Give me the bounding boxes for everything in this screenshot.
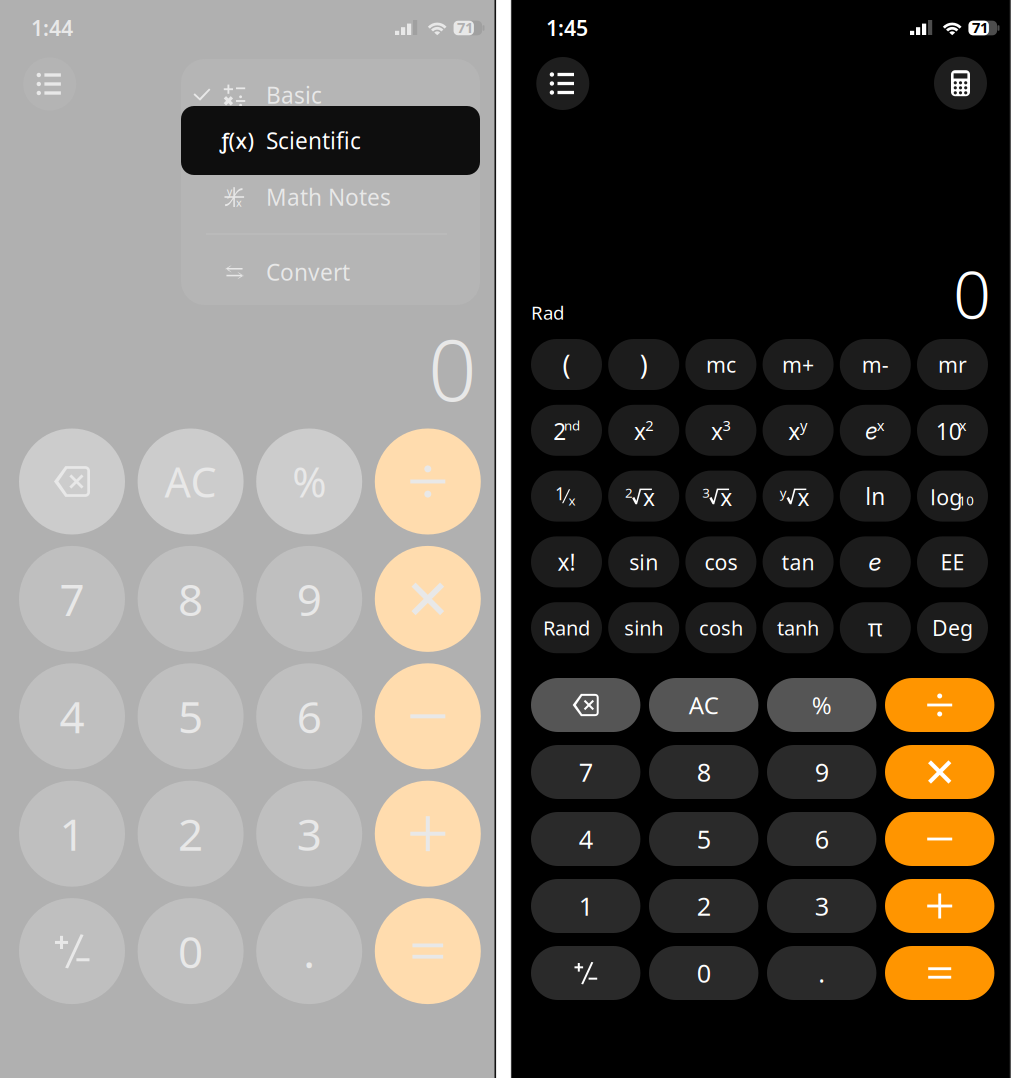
button[interactable]: 9 [767,745,876,799]
button[interactable]: tanh [763,602,834,653]
button[interactable]: ƒ(x) [181,106,480,174]
button[interactable]: 10 to the power x [917,405,988,456]
staticText: nd [564,416,580,434]
staticText: 0 [697,956,711,990]
staticText: % [812,689,832,721]
button[interactable]: x squared [608,405,679,456]
button[interactable]: 6 [256,663,362,769]
button[interactable]: y [181,163,480,231]
button[interactable]: 4 [19,663,125,769]
button[interactable]: Deg [917,602,988,653]
button[interactable]: 3 [767,879,876,933]
button[interactable]: y root of x [763,471,834,522]
button[interactable]: 1 [19,781,125,887]
button[interactable]: Calculator modes [23,57,76,110]
button[interactable]: Calculator keypad [934,57,987,110]
button[interactable]: 0 [138,898,244,1004]
button[interactable]: 5 [649,812,758,866]
button[interactable]: ) [608,339,679,390]
button[interactable]: 7 [531,745,640,799]
button[interactable]: Basic [181,61,480,129]
button[interactable]: 1 [531,879,640,933]
staticText: Math Notes [266,182,391,212]
button[interactable]: 4 [531,812,640,866]
button[interactable]: x! [531,536,602,587]
button[interactable]: Subtract [885,812,994,866]
staticText: mr [938,350,967,379]
button[interactable]: sin [608,536,679,587]
staticText: 2 [697,889,711,923]
button[interactable]: Second functions [531,405,602,456]
staticText: 1 [555,482,565,505]
button[interactable]: 2 [138,781,244,887]
button[interactable]: 2 [649,879,758,933]
button[interactable]: Multiply [885,745,994,799]
staticText: 8 [697,755,711,789]
button[interactable]: mr [917,339,988,390]
button[interactable]: Square root of x [608,471,679,522]
staticText: e [865,418,878,445]
button[interactable]: tan [763,536,834,587]
button[interactable]: . [256,898,362,1004]
staticText: 6 [815,822,829,856]
button[interactable]: 9 [256,546,362,652]
staticText: cosh [699,614,743,641]
button[interactable]: ln [840,471,911,522]
staticText: π [868,613,883,643]
button[interactable]: AC [649,678,758,732]
button[interactable]: Subtract [375,663,481,769]
button[interactable]: . [767,946,876,1000]
button[interactable]: EE [917,536,988,587]
staticText: 0 [178,922,203,980]
staticText: Convert [266,257,350,287]
button[interactable]: cos [685,536,756,587]
button[interactable]: 3 [256,781,362,887]
button[interactable]: cosh [685,602,756,653]
button[interactable]: sinh [608,602,679,653]
button[interactable]: Delete [19,428,125,534]
button[interactable]: Rand [531,602,602,653]
button[interactable]: Calculator modes [536,57,589,110]
button[interactable]: Add [885,879,994,933]
button[interactable]: mc [685,339,756,390]
button[interactable]: AC [138,428,244,534]
button[interactable]: 6 [767,812,876,866]
staticText: 6 [297,687,322,745]
button[interactable]: 5 [138,663,244,769]
staticText: x [788,416,800,446]
staticText: 4 [59,687,84,745]
button[interactable]: π [840,602,911,653]
button[interactable]: Equals [885,946,994,1000]
button[interactable]: m- [840,339,911,390]
button[interactable]: Divide [375,428,481,534]
button[interactable]: e [840,536,911,587]
button[interactable]: 8 [649,745,758,799]
button[interactable]: 0 [649,946,758,1000]
button[interactable]: ( [531,339,602,390]
staticText: m- [862,350,889,379]
button[interactable]: x cubed [685,405,756,456]
button[interactable]: e to the power x [840,405,911,456]
button[interactable]: Plus minus [19,898,125,1004]
button[interactable]: Cube root of x [685,471,756,522]
button[interactable]: Delete [531,678,640,732]
staticText: m+ [782,350,814,379]
button[interactable]: Convert [181,238,480,306]
button[interactable]: Divide [885,678,994,732]
button[interactable]: x to the power y [763,405,834,456]
button[interactable]: One over x [531,471,602,522]
button[interactable]: Equals [375,898,481,1004]
button[interactable]: % [256,428,362,534]
button[interactable]: Add [375,781,481,887]
staticText: cos [704,548,737,576]
button[interactable]: m+ [763,339,834,390]
staticText: 3 [297,804,322,863]
staticText: 9 [297,570,322,628]
button[interactable]: 8 [138,546,244,652]
button[interactable]: Multiply [375,546,481,652]
button[interactable]: % [767,678,876,732]
button[interactable]: 7 [19,546,125,652]
button[interactable]: Plus minus [531,946,640,1000]
staticText: % [292,454,326,509]
button[interactable]: Log base 10 [917,471,988,522]
